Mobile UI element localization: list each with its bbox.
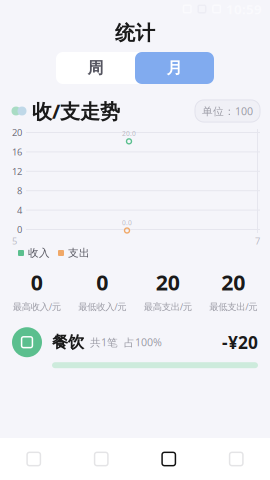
staticText: 占100% <box>124 335 162 349</box>
staticText: 最低收入/元 <box>78 300 126 313</box>
staticText: 4 <box>17 204 22 216</box>
staticText: 20.0 <box>122 129 136 138</box>
staticText: 0 <box>96 268 108 296</box>
staticText: 16 <box>12 146 22 158</box>
staticText: 7 <box>255 235 260 247</box>
staticText: 0 <box>31 268 43 296</box>
staticText: 12 <box>12 165 22 177</box>
staticText: 最低支出/元 <box>209 300 257 313</box>
button[interactable]: Wallet <box>0 438 67 480</box>
button[interactable]: Profile <box>202 438 270 480</box>
staticText: 0.0 <box>122 218 132 227</box>
staticText: 支出 <box>68 246 90 259</box>
staticText: 餐饮 <box>52 332 84 352</box>
staticText: 收入 <box>28 246 50 259</box>
staticText: 周 <box>87 58 103 78</box>
staticText: 单位：100 <box>202 104 253 118</box>
staticText: -¥20 <box>222 331 258 354</box>
button[interactable]: Records <box>67 438 135 480</box>
staticText: 20 <box>12 126 22 139</box>
staticText: 收/支走势 <box>32 98 120 124</box>
staticText: 5 <box>12 235 17 247</box>
staticText: 最高支出/元 <box>144 300 192 313</box>
staticText: 统计 <box>115 21 155 45</box>
staticText: 月 <box>166 58 182 78</box>
staticText: 20 <box>221 268 245 296</box>
staticText: 20 <box>156 268 180 296</box>
button[interactable]: Statistics <box>135 438 202 480</box>
staticText: 0 <box>17 223 22 236</box>
button[interactable]: 月 <box>135 52 214 84</box>
staticText: 最高收入/元 <box>13 300 61 313</box>
staticText: 共1笔 <box>90 335 118 349</box>
staticText: 8 <box>17 184 22 197</box>
button[interactable]: 周 <box>56 52 135 84</box>
button[interactable]: 餐饮 <box>0 323 270 373</box>
